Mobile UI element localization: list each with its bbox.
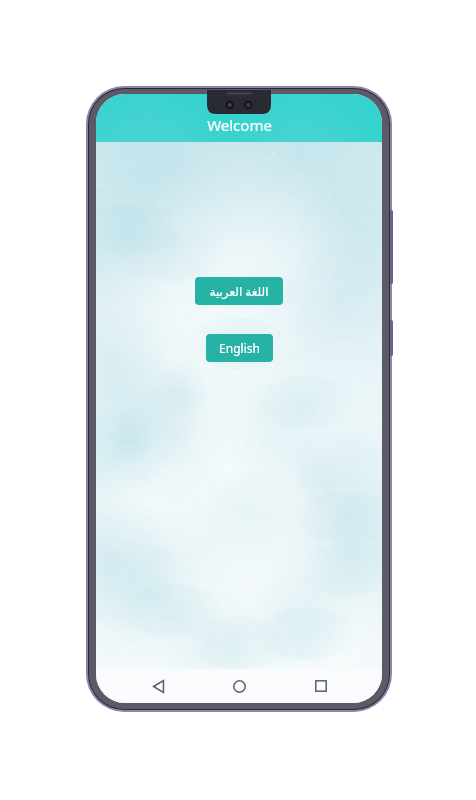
button[interactable]: Home — [219, 669, 259, 703]
button[interactable]: Recent apps — [301, 669, 341, 703]
staticText: Welcome — [207, 115, 272, 135]
button[interactable]: Back — [138, 669, 178, 703]
staticText: English — [219, 340, 260, 356]
button[interactable]: اللغة العربية — [195, 277, 283, 305]
staticText: اللغة العربية — [209, 283, 269, 299]
button[interactable]: English — [206, 334, 273, 362]
